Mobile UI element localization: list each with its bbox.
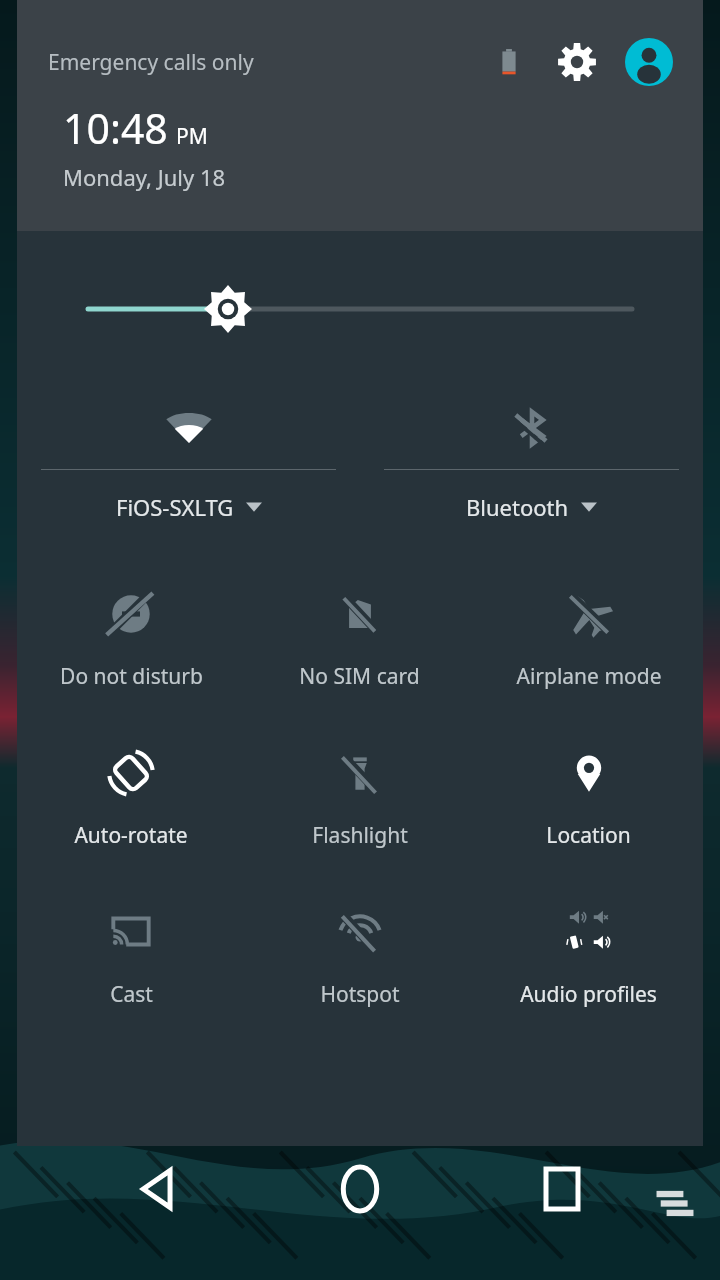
staticText: Emergency calls only (48, 48, 254, 77)
button[interactable]: Auto-rotate (17, 743, 245, 854)
staticText: PM (176, 122, 208, 151)
button[interactable]: FiOS-SXLTG (17, 397, 360, 522)
button[interactable]: Bluetooth (360, 397, 703, 522)
staticText: Bluetooth (466, 492, 569, 522)
button[interactable]: User (623, 36, 675, 88)
staticText: 10:48 (63, 100, 168, 156)
button[interactable]: Audio profiles (474, 902, 703, 1013)
staticText: Flashlight (312, 821, 408, 850)
button[interactable]: Do not disturb (17, 584, 245, 695)
button[interactable]: Airplane mode (474, 584, 703, 695)
button[interactable]: Home (317, 1146, 403, 1232)
button[interactable]: Battery (487, 40, 531, 84)
staticText: Location (546, 821, 631, 850)
staticText: Auto-rotate (74, 821, 188, 850)
staticText: No SIM card (299, 662, 420, 691)
button[interactable]: Settings (553, 38, 601, 86)
button[interactable]: Location (474, 743, 703, 854)
staticText: Monday, July 18 (63, 162, 226, 192)
button[interactable]: Hotspot (245, 902, 474, 1013)
button[interactable]: Recents (519, 1146, 605, 1232)
staticText: Do not disturb (60, 662, 203, 691)
button[interactable]: Cast (17, 902, 245, 1013)
staticText: Cast (110, 980, 153, 1009)
button[interactable]: Switch keyboard (648, 1179, 702, 1233)
staticText: Hotspot (320, 980, 400, 1009)
staticText: FiOS-SXLTG (116, 492, 234, 522)
button[interactable]: Back (116, 1146, 202, 1232)
staticText: Audio profiles (520, 980, 657, 1009)
button[interactable]: No SIM card (245, 584, 474, 695)
button[interactable]: Brightness (17, 279, 703, 339)
button[interactable]: Flashlight (245, 743, 474, 854)
staticText: Airplane mode (516, 662, 662, 691)
